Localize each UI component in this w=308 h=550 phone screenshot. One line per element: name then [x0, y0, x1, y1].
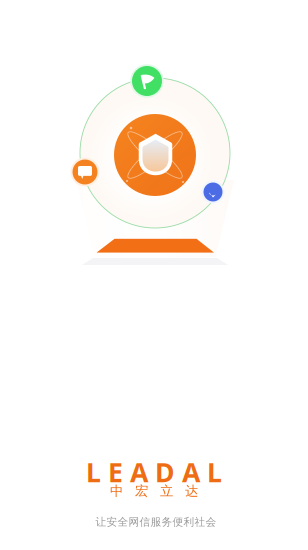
staticText: 让安全网信服务便利社会	[95, 515, 216, 528]
staticText: L E A D A L	[86, 454, 222, 490]
staticText: 中 宏 立 达	[110, 483, 198, 499]
